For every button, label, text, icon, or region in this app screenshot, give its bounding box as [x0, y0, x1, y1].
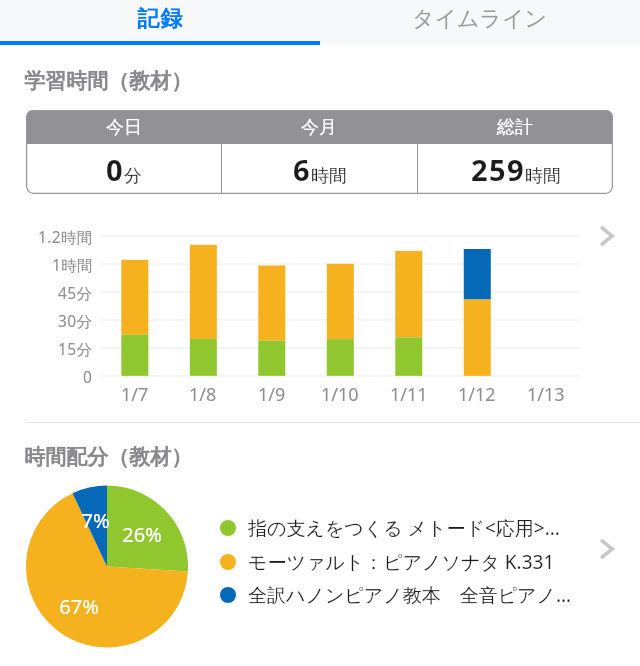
staticText: 時間 — [311, 165, 347, 188]
button[interactable]: 今日 — [26, 110, 613, 194]
staticText: 時間配分（教材） — [24, 444, 192, 470]
staticText: 指の支えをつくる メトード<応用>... — [248, 515, 560, 541]
staticText: 1/7 — [121, 382, 149, 407]
staticText: 今月 — [301, 116, 337, 139]
staticText: 26% — [122, 521, 162, 548]
button[interactable]: View bar chart details — [586, 216, 626, 256]
staticText: 1/13 — [527, 382, 565, 407]
staticText: 45分 — [58, 282, 93, 303]
staticText: 1/12 — [458, 382, 496, 407]
staticText: 1/10 — [321, 382, 359, 407]
staticText: 今日 — [106, 116, 142, 139]
staticText: 15分 — [58, 338, 93, 359]
button[interactable]: モーツァルト：ピアノソナタ K.331 — [216, 545, 596, 579]
staticText: タイムライン — [412, 5, 548, 33]
staticText: 全訳ハノンピアノ教本 全音ピアノ… — [248, 582, 572, 608]
staticText: 6 — [293, 150, 311, 189]
staticText: 67% — [59, 593, 99, 620]
staticText: モーツァルト：ピアノソナタ K.331 — [248, 549, 555, 575]
staticText: 259 — [471, 150, 525, 189]
staticText: 1/9 — [258, 382, 286, 407]
button[interactable]: 全訳ハノンピアノ教本 全音ピアノ… — [216, 578, 596, 612]
staticText: 0 — [106, 150, 124, 189]
staticText: 0 — [83, 366, 93, 387]
button[interactable]: 記録 — [0, 0, 320, 45]
staticText: 1時間 — [52, 254, 93, 275]
staticText: 1/11 — [390, 382, 428, 407]
staticText: 記録 — [137, 5, 183, 33]
staticText: 学習時間（教材） — [24, 68, 192, 94]
staticText: 1.2時間 — [38, 226, 93, 247]
button[interactable]: View time breakdown details — [586, 529, 626, 569]
staticText: 7% — [81, 507, 110, 534]
button[interactable]: タイムライン — [320, 0, 640, 45]
staticText: 分 — [124, 165, 142, 188]
staticText: 30分 — [58, 310, 93, 331]
staticText: 総計 — [497, 116, 533, 139]
button[interactable]: 指の支えをつくる メトード<応用>... — [216, 511, 596, 545]
staticText: 1/8 — [189, 382, 217, 407]
staticText: 時間 — [525, 165, 561, 188]
